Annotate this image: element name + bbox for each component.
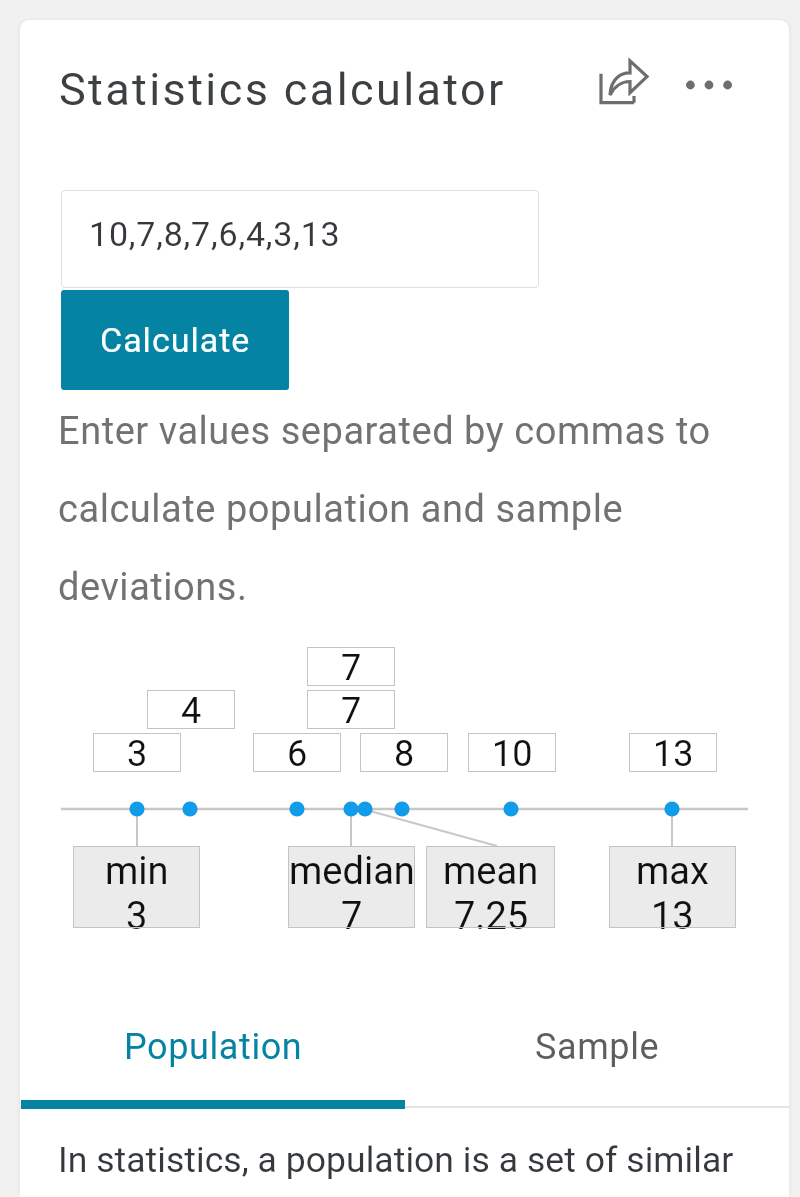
staticText: Statistics calculator [59, 63, 506, 116]
staticText: calculate population and sample [58, 487, 624, 532]
staticText: 10 [492, 733, 533, 772]
staticText: 3 [127, 733, 148, 772]
staticText: 13 [653, 733, 694, 772]
button[interactable]: 10,7,8,7,6,4,3,13 [61, 190, 539, 288]
staticText: 6 [287, 733, 308, 772]
staticText: 8 [394, 733, 415, 772]
staticText: Sample [535, 1026, 660, 1068]
staticText: Enter values separated by commas to [58, 409, 711, 454]
staticText: 10,7,8,7,6,4,3,13 [89, 214, 341, 254]
button[interactable]: Population [20, 1011, 406, 1083]
staticText: min [105, 849, 169, 894]
staticText: 13 [651, 894, 694, 931]
staticText: median [289, 849, 415, 894]
staticText: 7 [341, 894, 363, 931]
button[interactable]: Share [582, 39, 666, 123]
button[interactable]: More options [667, 43, 751, 127]
button[interactable]: Sample [406, 1011, 788, 1083]
staticText: mean [443, 849, 539, 894]
staticText: 3 [126, 894, 148, 931]
staticText: deviations. [58, 565, 248, 610]
staticText: 7 [341, 647, 362, 686]
staticText: max [636, 849, 709, 894]
button[interactable]: Calculate [61, 290, 289, 390]
staticText: In statistics, a population is a set of … [58, 1139, 734, 1181]
staticText: 4 [181, 690, 202, 729]
staticText: Calculate [100, 320, 251, 360]
staticText: Population [124, 1026, 303, 1068]
staticText: 7 [341, 690, 362, 729]
staticText: 7.25 [454, 894, 529, 931]
